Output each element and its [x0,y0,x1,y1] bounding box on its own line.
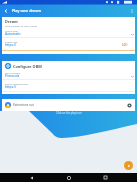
button[interactable]: Recents [100,173,111,182]
staticText: Protocols [5,74,20,78]
button[interactable]: Back [26,173,37,182]
button[interactable]: More options [126,5,137,16]
button[interactable]: Home [63,173,74,182]
button[interactable]: Open scheme dropdown [130,74,135,79]
staticText: OBM Scheme [5,71,21,74]
staticText: Automatic [5,32,21,36]
staticText: Dream URL [5,40,18,43]
staticText: Extensions out [13,103,34,107]
staticText: ADD [122,43,128,47]
button[interactable]: Settings [126,102,132,108]
staticText: https:// [5,43,17,47]
staticText: Configure OBM [13,64,42,69]
staticText: Would type [5,29,18,32]
staticText: Play own dream [12,8,42,13]
staticText: Dream [5,19,18,24]
button[interactable]: Extensions out [2,99,135,111]
button[interactable]: Open dropdown [130,32,135,37]
staticText: Click on the play icon [56,111,82,115]
staticText: source snapshot URL [5,82,29,85]
button[interactable]: Back [0,5,11,16]
button[interactable]: Play [124,161,133,170]
staticText: Add a dream of your choice [5,24,38,27]
staticText: https:// [5,85,17,89]
